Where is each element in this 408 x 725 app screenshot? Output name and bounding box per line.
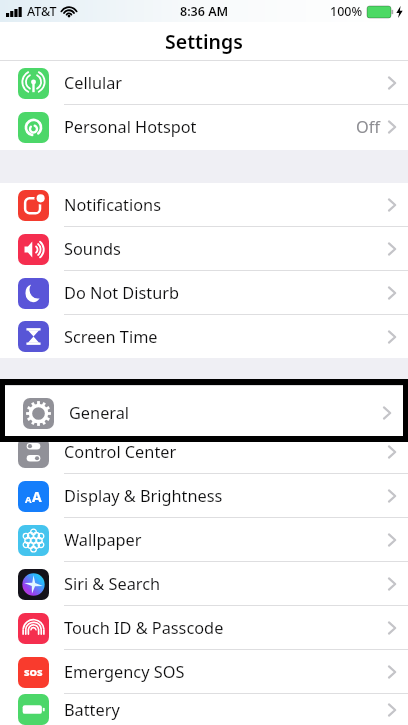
other: Touch ID & Passcode <box>18 613 49 644</box>
button[interactable]: A <box>0 474 408 518</box>
staticText: Wallpaper <box>64 529 142 551</box>
staticText: 8:36 AM <box>180 3 229 20</box>
staticText: Settings <box>165 28 243 55</box>
staticText: SOS <box>24 666 43 679</box>
staticText: A <box>32 487 42 506</box>
staticText: Screen Time <box>64 326 158 348</box>
staticText: AT&T <box>27 3 57 20</box>
staticText: Battery <box>64 699 120 721</box>
staticText: Emergency SOS <box>64 661 185 683</box>
staticText: 100% <box>330 3 363 20</box>
other: Notifications <box>18 190 49 221</box>
other: General <box>23 398 54 429</box>
button[interactable]: SOS <box>0 650 408 694</box>
button[interactable]: Do Not Disturb <box>0 271 408 315</box>
button[interactable]: Siri & Search <box>0 562 408 606</box>
button[interactable]: General <box>5 391 403 435</box>
button[interactable]: Touch ID & Passcode <box>0 606 408 650</box>
other: Battery <box>18 694 49 725</box>
staticText: A <box>25 493 32 506</box>
staticText: Sounds <box>64 238 121 260</box>
other: Screen Time <box>18 321 49 352</box>
button[interactable]: Battery <box>0 694 408 725</box>
other: Cellular <box>18 68 49 99</box>
other: Wallpaper <box>18 525 49 556</box>
other: Sounds <box>18 234 49 265</box>
other: Do Not Disturb <box>18 278 49 309</box>
staticText: Notifications <box>64 194 161 216</box>
staticText: Display & Brightness <box>64 485 223 507</box>
staticText: Siri & Search <box>64 573 161 595</box>
button[interactable]: Screen Time <box>0 315 408 358</box>
button[interactable]: Personal Hotspot <box>0 105 408 149</box>
staticText: Off <box>356 116 380 138</box>
button[interactable]: Control Center <box>0 430 408 474</box>
other: Siri & Search <box>18 569 49 600</box>
other: Personal Hotspot <box>18 112 49 143</box>
button[interactable]: Wallpaper <box>0 518 408 562</box>
button[interactable]: Sounds <box>0 227 408 271</box>
staticText: General <box>69 402 130 424</box>
staticText: Do Not Disturb <box>64 282 179 304</box>
staticText: Personal Hotspot <box>64 116 197 138</box>
button[interactable]: Cellular <box>0 61 408 105</box>
staticText: Control Center <box>64 441 177 463</box>
other: Control Center <box>18 437 49 468</box>
button[interactable]: Notifications <box>0 183 408 227</box>
staticText: Cellular <box>64 72 123 94</box>
staticText: Touch ID & Passcode <box>64 617 224 639</box>
